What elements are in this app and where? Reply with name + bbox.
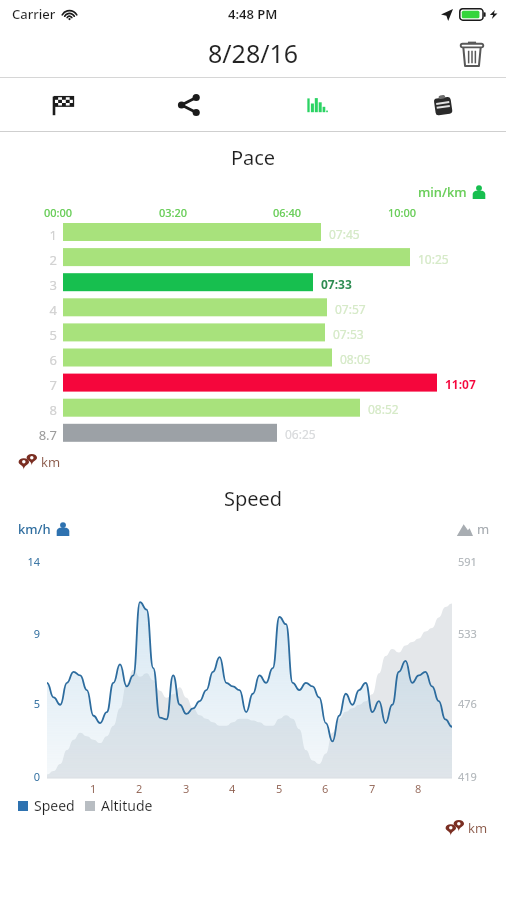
button[interactable]: Map xyxy=(0,78,126,132)
staticText: 6 xyxy=(322,781,329,796)
staticText: Pace xyxy=(0,144,506,171)
staticText: Speed xyxy=(0,485,506,512)
staticText: 07:57 xyxy=(335,301,366,317)
staticText: 5 xyxy=(276,781,283,796)
staticText: 8 xyxy=(18,401,57,419)
button[interactable]: Delete xyxy=(450,31,494,75)
staticText: km/h xyxy=(18,520,51,538)
staticText: 00:00 xyxy=(44,205,73,220)
staticText: min/km xyxy=(418,183,467,201)
staticText: 1 xyxy=(90,781,97,796)
staticText: 7 xyxy=(369,781,376,796)
staticText: 06:25 xyxy=(285,426,316,442)
staticText: m xyxy=(477,520,490,538)
staticText: Speed xyxy=(34,796,75,815)
staticText: 533 xyxy=(458,626,477,641)
staticText: 8/28/16 xyxy=(208,36,299,70)
staticText: 10:00 xyxy=(388,205,417,220)
staticText: 03:20 xyxy=(159,205,188,220)
staticText: km xyxy=(468,819,488,837)
staticText: 4 xyxy=(229,781,236,796)
staticText: 07:33 xyxy=(321,276,352,292)
staticText: 6 xyxy=(18,351,57,369)
staticText: 7 xyxy=(18,376,57,394)
staticText: 0 xyxy=(12,769,40,784)
staticText: 8.7 xyxy=(18,426,57,444)
button[interactable]: Details xyxy=(379,78,506,132)
staticText: 08:52 xyxy=(368,401,399,417)
staticText: 4:48 PM xyxy=(228,5,278,23)
staticText: 419 xyxy=(458,769,477,784)
staticText: 591 xyxy=(458,554,477,569)
staticText: Carrier xyxy=(12,5,56,23)
button[interactable]: Charts xyxy=(252,78,379,132)
staticText: 10:25 xyxy=(418,251,449,267)
staticText: 11:07 xyxy=(445,376,476,392)
button[interactable]: Share xyxy=(126,78,252,132)
staticText: 5 xyxy=(18,326,57,344)
staticText: 8 xyxy=(415,781,422,796)
staticText: 9 xyxy=(12,626,40,641)
staticText: 3 xyxy=(183,781,190,796)
staticText: 3 xyxy=(18,276,57,294)
staticText: Altitude xyxy=(101,796,153,815)
staticText: 2 xyxy=(18,251,57,269)
staticText: 06:40 xyxy=(273,205,302,220)
staticText: 476 xyxy=(458,696,477,711)
staticText: 2 xyxy=(136,781,143,796)
staticText: 4 xyxy=(18,301,57,319)
staticText: 07:53 xyxy=(333,326,364,342)
staticText: km xyxy=(41,453,61,471)
staticText: 07:45 xyxy=(329,226,360,242)
staticText: 08:05 xyxy=(340,351,371,367)
staticText: 14 xyxy=(12,554,40,569)
staticText: 1 xyxy=(18,226,57,244)
staticText: 5 xyxy=(12,696,40,711)
